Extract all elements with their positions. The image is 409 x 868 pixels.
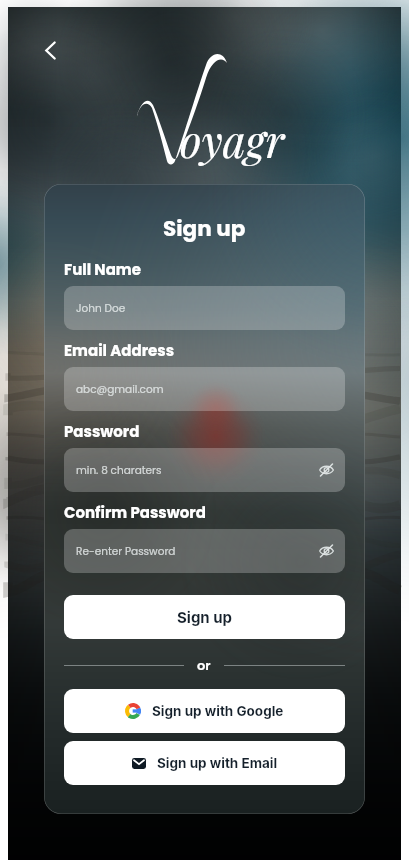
staticText: Sign up with Email: [157, 755, 278, 771]
staticText: or: [197, 656, 211, 674]
staticText: oyagr: [180, 110, 285, 169]
staticText: Re-enter Password: [76, 544, 176, 559]
button[interactable]: Sign up: [64, 595, 345, 639]
staticText: Sign up with Google: [152, 703, 284, 719]
button[interactable]: Re-enter Password: [64, 529, 345, 573]
staticText: Password: [64, 421, 140, 442]
staticText: abc@gmail.com: [76, 382, 164, 397]
button[interactable]: Sign up with Email: [64, 741, 345, 785]
staticText: John Doe: [76, 301, 126, 316]
button[interactable]: Sign up with Google: [64, 689, 345, 733]
button[interactable]: abc@gmail.com: [64, 367, 345, 411]
staticText: min. 8 charaters: [76, 463, 162, 478]
button[interactable]: Back: [33, 33, 67, 67]
button[interactable]: John Doe: [64, 286, 345, 330]
staticText: Confirm Password: [64, 502, 206, 523]
staticText: Sign up: [163, 213, 246, 243]
staticText: Full Name: [64, 259, 141, 280]
staticText: Sign up: [177, 608, 233, 626]
staticText: Email Address: [64, 340, 175, 361]
button[interactable]: min. 8 charaters: [64, 448, 345, 492]
